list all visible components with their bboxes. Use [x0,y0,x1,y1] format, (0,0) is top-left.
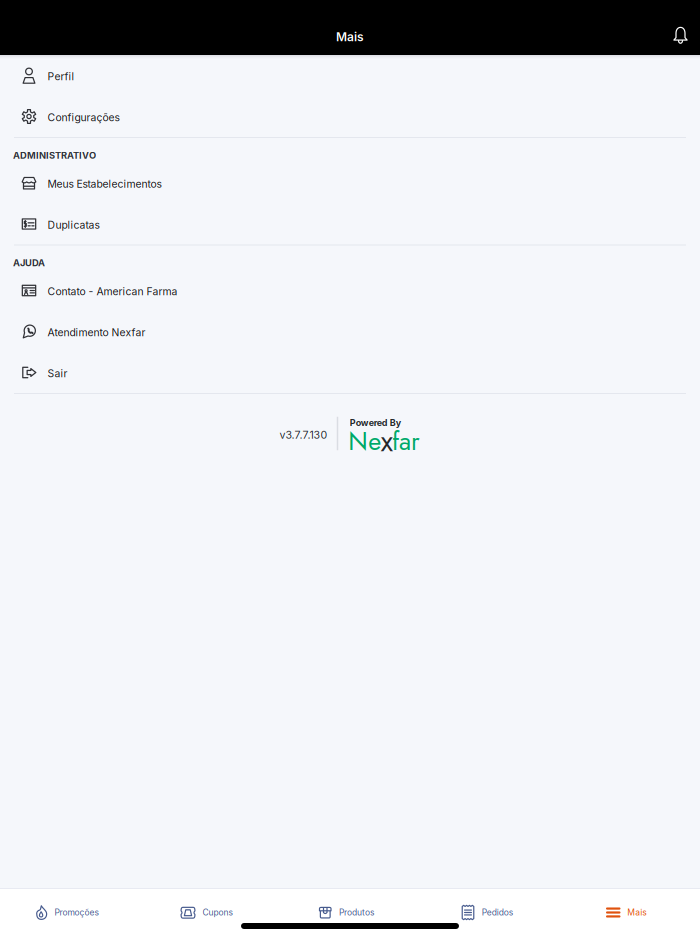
staticText: Configurações [47,111,119,124]
staticText: Cupons [202,907,233,918]
staticText: Duplicatas [47,219,99,231]
staticText: Meus Estabelecimentos [47,178,161,190]
staticText: Atendimento Nexfar [47,326,145,339]
button[interactable]: Configurações [0,96,700,137]
button[interactable]: Duplicatas [0,203,700,244]
staticText: far [392,423,420,459]
button[interactable]: Contato - American Farma [0,270,700,311]
button[interactable]: Mais [557,889,697,934]
button[interactable]: Pedidos [417,889,557,934]
staticText: Mais [627,907,647,918]
staticText: Sair [47,367,67,380]
staticText: Perfil [47,70,74,83]
staticText: ADMINISTRATIVO [13,150,96,161]
staticText: Promoções [54,907,99,918]
staticText: Powered By [350,417,401,428]
staticText: x [381,420,393,462]
staticText: Contato - American Farma [47,285,177,298]
button[interactable]: Sair [0,352,700,393]
staticText: Pedidos [482,907,514,918]
button[interactable]: Perfil [0,55,700,96]
staticText: Produtos [339,907,375,918]
button[interactable]: Promoções [0,889,137,934]
staticText: v3.7.7.130 [280,428,328,441]
button[interactable]: Cupons [137,889,277,934]
staticText: AJUDA [13,257,45,268]
button[interactable]: Produtos [277,889,417,934]
staticText: Mais [336,30,364,44]
staticText: Ne [348,423,381,459]
button[interactable]: Notificações [665,20,695,50]
button[interactable]: Meus Estabelecimentos [0,162,700,203]
button[interactable]: Atendimento Nexfar [0,311,700,352]
